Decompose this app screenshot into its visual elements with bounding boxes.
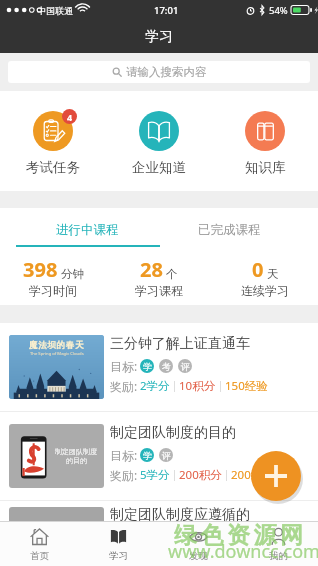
staticText: 连续学习 xyxy=(241,283,289,298)
staticText: 5学分 xyxy=(140,549,170,565)
button[interactable]: Add course xyxy=(251,451,301,501)
button[interactable]: 制定团队制度 xyxy=(0,412,318,500)
staticText: 目标: xyxy=(110,447,138,463)
staticText: 制定团队制度的目的 xyxy=(110,424,236,442)
staticText: 398 xyxy=(23,256,58,283)
staticText: www.downcc.com xyxy=(168,539,318,564)
staticText: 进行中课程 xyxy=(56,222,119,238)
staticText: 200积分 xyxy=(179,467,222,483)
button[interactable]: 首页 xyxy=(0,522,79,566)
button[interactable]: 知识库 xyxy=(212,91,318,191)
staticText: 150经验 xyxy=(225,378,268,394)
staticText: 学习 xyxy=(145,28,173,46)
staticText: 0 xyxy=(252,256,264,283)
button[interactable]: 企业知道 xyxy=(106,91,212,191)
staticText: 我的 xyxy=(269,550,288,562)
staticText: 发现 xyxy=(189,550,208,562)
button[interactable]: 398 xyxy=(0,248,106,305)
button[interactable]: 4 xyxy=(0,91,106,191)
staticText: 4 xyxy=(67,111,73,123)
staticText: 绿色资源网 xyxy=(174,521,307,550)
staticText: 请输入搜索内容 xyxy=(126,65,207,79)
staticText: 魔法坝的春天 xyxy=(29,340,85,351)
button[interactable]: 我的 xyxy=(238,522,318,566)
staticText: 中国联通 xyxy=(37,5,73,16)
staticText: 考 xyxy=(162,361,171,372)
staticText: 知识库 xyxy=(245,159,286,176)
button[interactable]: 制定团队制度应遵循的 xyxy=(0,506,318,566)
staticText: 企业知道 xyxy=(132,159,186,176)
staticText: 5学分 xyxy=(140,467,170,483)
staticText: 的目的 xyxy=(66,456,87,465)
staticText: 54% xyxy=(269,4,288,17)
button[interactable]: 已完成课程 xyxy=(158,212,300,248)
staticText: 个 xyxy=(166,267,178,281)
button[interactable]: 0 xyxy=(212,248,318,305)
staticText: The Spring of Magic Clouds xyxy=(30,351,84,357)
staticText: 评 xyxy=(162,450,171,461)
staticText: 制定团队制度应遵循的 xyxy=(110,506,250,524)
staticText: 学习时间 xyxy=(29,283,77,298)
button[interactable]: 魔法坝的春天 xyxy=(0,323,318,411)
staticText: 分钟 xyxy=(61,267,84,281)
staticText: 奖励: xyxy=(110,549,138,565)
staticText: 已完成课程 xyxy=(198,222,261,238)
staticText: 2学分 xyxy=(140,378,170,394)
staticText: 目标: xyxy=(110,358,138,374)
staticText: 奖励: xyxy=(110,467,138,483)
staticText: 评 xyxy=(181,361,190,372)
staticText: 三分钟了解上证直通车 xyxy=(110,335,250,353)
staticText: 目标: xyxy=(110,529,138,545)
staticText: 学习课程 xyxy=(135,283,183,298)
staticText: 学 xyxy=(143,361,152,372)
staticText: 首页 xyxy=(30,550,49,562)
staticText: 17:01 xyxy=(154,4,179,17)
button[interactable]: 学习 xyxy=(79,522,158,566)
staticText: 制定团队制度 xyxy=(55,447,97,456)
staticText: 奖励: xyxy=(110,378,138,394)
button[interactable]: 发现 xyxy=(158,522,238,566)
button[interactable]: 28 xyxy=(106,248,212,305)
button[interactable]: 请输入搜索内容 xyxy=(8,61,310,83)
staticText: 学 xyxy=(143,450,152,461)
staticText: 10积分 xyxy=(179,378,216,394)
staticText: 28 xyxy=(140,256,163,283)
button[interactable]: 进行中课程 xyxy=(16,212,158,248)
staticText: 天 xyxy=(267,267,279,281)
staticText: 考试任务 xyxy=(26,159,80,176)
staticText: 200经验 xyxy=(231,467,274,483)
staticText: 学习 xyxy=(109,550,128,562)
